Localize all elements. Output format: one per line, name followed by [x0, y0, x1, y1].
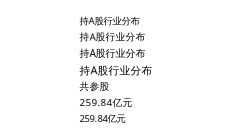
- staticText: 持A股行业分布: [79, 63, 152, 77]
- staticText: 持A股行业分布: [79, 14, 139, 27]
- staticText: 持A股行业分布: [79, 30, 145, 43]
- staticText: 共参股: [79, 80, 109, 93]
- staticText: 259.84亿元: [79, 96, 132, 109]
- staticText: 持A股行业分布: [79, 46, 145, 60]
- staticText: 259.84亿元: [79, 112, 125, 125]
